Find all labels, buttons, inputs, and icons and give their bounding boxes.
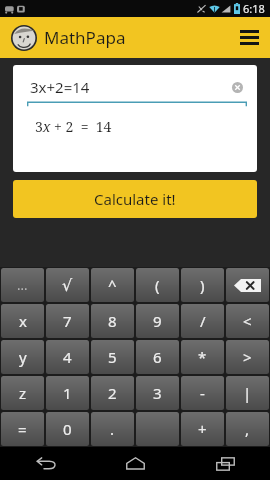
- button[interactable]: 7: [46, 304, 89, 338]
- staticText: 4: [63, 347, 72, 367]
- button[interactable]: ^: [91, 268, 134, 302]
- staticText: |: [243, 383, 252, 403]
- staticText: z: [19, 383, 27, 403]
- button[interactable]: 5: [91, 340, 134, 374]
- button[interactable]: ...: [1, 268, 44, 302]
- staticText: MathPapa: [44, 26, 126, 49]
- button[interactable]: y: [1, 340, 44, 374]
- staticText: ): [200, 275, 205, 295]
- button[interactable]: Calculate it!: [13, 180, 257, 218]
- button[interactable]: >: [226, 340, 269, 374]
- button[interactable]: Home: [90, 447, 180, 480]
- staticText: 8: [108, 311, 117, 331]
- staticText: 0: [63, 419, 72, 439]
- staticText: 9: [153, 311, 162, 331]
- button[interactable]: Menu: [229, 17, 270, 58]
- button[interactable]: Back: [0, 447, 90, 480]
- staticText: ,: [245, 419, 250, 439]
- staticText: .: [110, 419, 115, 439]
- button[interactable]: x: [1, 304, 44, 338]
- button[interactable]: z: [1, 376, 44, 410]
- staticText: /: [200, 311, 206, 331]
- staticText: =: [18, 419, 27, 439]
- staticText: y: [19, 347, 27, 367]
- button[interactable]: 8: [91, 304, 134, 338]
- staticText: 6: [153, 347, 162, 367]
- staticText: 1: [63, 383, 72, 403]
- button[interactable]: 2: [91, 376, 134, 410]
- button[interactable]: 4: [46, 340, 89, 374]
- staticText: x: [19, 311, 27, 331]
- button[interactable]: <: [226, 304, 269, 338]
- staticText: +: [198, 419, 207, 439]
- staticText: >: [243, 347, 252, 367]
- staticText: ^: [108, 275, 117, 295]
- staticText: -: [200, 383, 205, 403]
- button[interactable]: (: [136, 268, 179, 302]
- button[interactable]: +: [181, 412, 224, 446]
- staticText: 3x+2=14: [30, 77, 90, 97]
- staticText: 2: [108, 383, 117, 403]
- button[interactable]: .: [91, 412, 134, 446]
- staticText: 3: [153, 383, 162, 403]
- button[interactable]: Recent apps: [180, 447, 270, 480]
- button[interactable]: Clear input: [227, 77, 247, 97]
- button[interactable]: ,: [226, 412, 269, 446]
- button[interactable]: 1: [46, 376, 89, 410]
- staticText: √: [62, 276, 73, 295]
- button[interactable]: 0: [46, 412, 89, 446]
- button[interactable]: 3x+2=14: [30, 75, 247, 99]
- staticText: *: [198, 347, 207, 367]
- button[interactable]: /: [181, 304, 224, 338]
- staticText: <: [243, 311, 252, 331]
- staticText: 7: [63, 311, 72, 331]
- button[interactable]: ): [181, 268, 224, 302]
- button[interactable]: Backspace: [226, 268, 269, 302]
- button[interactable]: *: [181, 340, 224, 374]
- button[interactable]: [136, 412, 179, 446]
- button[interactable]: 6: [136, 340, 179, 374]
- button[interactable]: -: [181, 376, 224, 410]
- staticText: ...: [17, 276, 28, 294]
- staticText: Calculate it!: [94, 189, 176, 209]
- staticText: 5: [108, 347, 117, 367]
- staticText: 6:18: [243, 1, 265, 16]
- staticText: (: [155, 275, 160, 295]
- button[interactable]: =: [1, 412, 44, 446]
- button[interactable]: 9: [136, 304, 179, 338]
- staticText: 3x + 2 = 14: [35, 117, 112, 136]
- button[interactable]: 3: [136, 376, 179, 410]
- button[interactable]: √: [46, 268, 89, 302]
- button[interactable]: |: [226, 376, 269, 410]
